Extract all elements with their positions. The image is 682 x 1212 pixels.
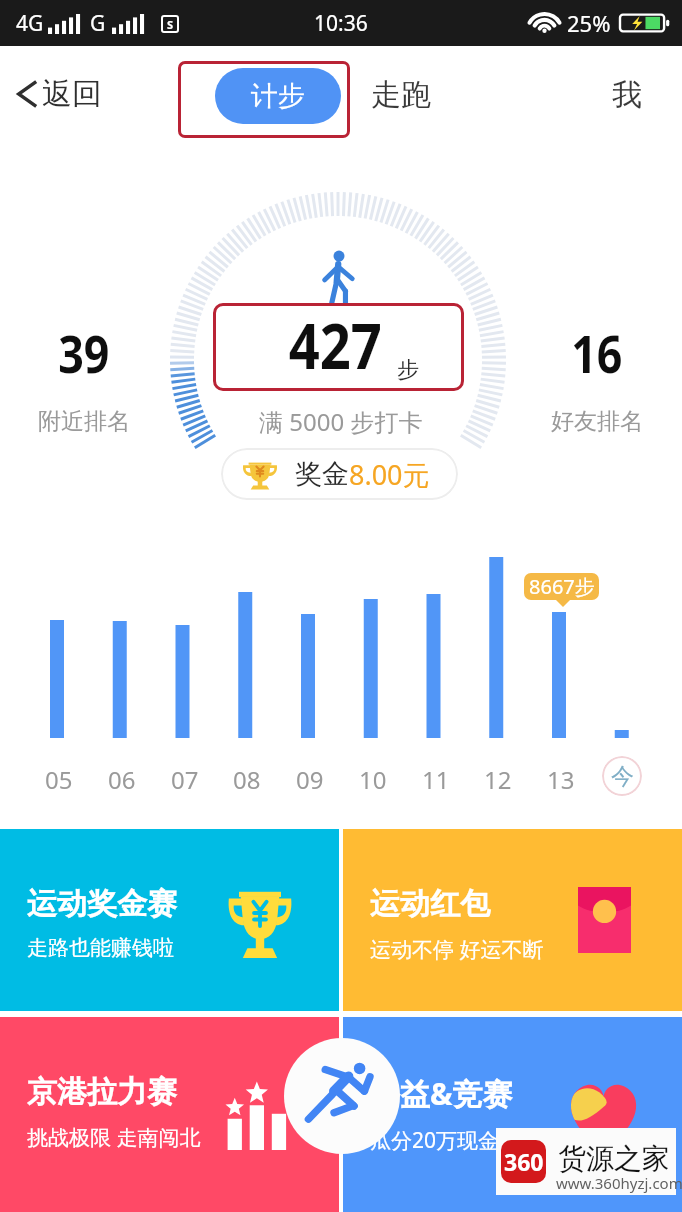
staticText: 13	[547, 763, 575, 796]
staticText: S	[167, 17, 174, 32]
button[interactable]: Start running	[284, 1038, 400, 1154]
staticText: 8.00元	[349, 456, 430, 493]
button[interactable]: 运动红包	[343, 829, 682, 1011]
staticText: 10:36	[314, 9, 368, 38]
button[interactable]: 公益&竞赛	[343, 1017, 682, 1212]
staticText: 11	[422, 763, 450, 796]
staticText: 427	[289, 303, 382, 387]
staticText: 返回	[42, 75, 102, 113]
staticText: 附近排名	[38, 407, 130, 436]
button[interactable]: 今	[602, 756, 642, 796]
button[interactable]: 运动奖金赛	[0, 829, 339, 1011]
staticText: 360	[504, 1146, 544, 1177]
button[interactable]: 走跑	[371, 76, 431, 114]
staticText: 4G	[16, 9, 44, 38]
staticText: 25%	[567, 8, 611, 38]
staticText: 挑战极限 走南闯北	[27, 1123, 201, 1152]
staticText: 好友排名	[551, 407, 643, 436]
staticText: 货源之家	[558, 1141, 670, 1176]
staticText: 08	[233, 763, 261, 796]
button[interactable]: 我	[612, 76, 642, 114]
staticText: 06	[108, 763, 136, 796]
staticText: G	[90, 9, 106, 38]
button[interactable]: 奖金	[221, 448, 458, 500]
button[interactable]: 返回	[14, 72, 102, 116]
staticText: 8667步	[529, 573, 595, 600]
staticText: 步	[397, 356, 419, 384]
staticText: 京港拉力赛	[27, 1073, 177, 1111]
button[interactable]: 京港拉力赛	[0, 1017, 339, 1212]
staticText: 走跑	[371, 76, 431, 114]
staticText: 10	[359, 763, 387, 796]
staticText: 今	[611, 762, 634, 791]
staticText: 运动不停 好运不断	[370, 935, 544, 964]
staticText: 奖金	[295, 457, 349, 491]
staticText: 运动奖金赛	[27, 885, 177, 923]
staticText: 计步	[251, 79, 305, 113]
staticText: 我	[612, 76, 642, 114]
staticText: 满 5000 步打卡	[259, 405, 423, 438]
staticText: 05	[45, 763, 73, 796]
staticText: 走路也能赚钱啦	[27, 935, 174, 961]
staticText: www.360hyzj.com	[556, 1173, 682, 1193]
button[interactable]: 计步	[215, 68, 341, 124]
staticText: 07	[171, 763, 199, 796]
staticText: 公益&竞赛	[370, 1073, 513, 1114]
staticText: 运动红包	[370, 885, 490, 923]
staticText: 39	[58, 317, 110, 388]
staticText: 09	[296, 763, 324, 796]
staticText: 瓜分20万现金大奖	[370, 1126, 542, 1155]
staticText: 16	[571, 317, 623, 388]
staticText: 12	[484, 763, 512, 796]
